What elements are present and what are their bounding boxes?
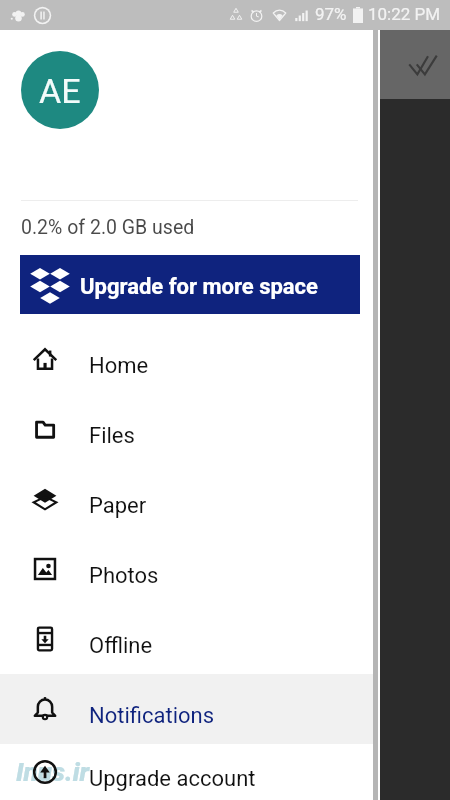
staticText: Notifications <box>89 703 215 729</box>
staticText: 0.2% of 2.0 GB used <box>21 216 195 239</box>
button[interactable]: Offline <box>0 604 373 674</box>
staticText: Files <box>89 423 135 449</box>
button[interactable]: Upgrade account <box>0 744 373 800</box>
staticText: 97% <box>315 4 347 24</box>
button[interactable]: AE <box>21 51 99 129</box>
button[interactable]: Home <box>0 324 373 394</box>
button[interactable]: Files <box>0 394 373 464</box>
button[interactable]: Notifications <box>0 674 373 744</box>
staticText: Home <box>89 353 149 379</box>
button[interactable]: Photos <box>0 534 373 604</box>
staticText: Offline <box>89 633 153 659</box>
staticText: 10:22 PM <box>368 4 441 24</box>
button[interactable]: Upgrade for more space <box>20 255 360 314</box>
staticText: Photos <box>89 563 159 589</box>
button[interactable]: Select all <box>400 42 446 88</box>
staticText: Paper <box>89 493 147 519</box>
staticText: AE <box>39 71 81 111</box>
staticText: Upgrade account <box>89 766 256 792</box>
button[interactable]: Paper <box>0 464 373 534</box>
staticText: Upgrade for more space <box>80 274 318 300</box>
staticText: Inus.ir <box>16 757 90 787</box>
